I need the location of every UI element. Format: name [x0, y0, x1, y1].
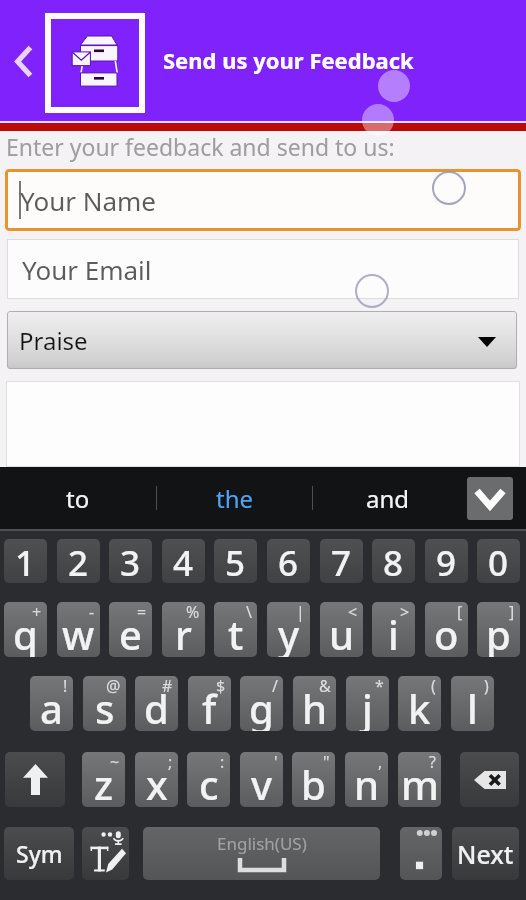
- staticText: Send us your Feedback: [163, 45, 414, 75]
- button[interactable]: q: [4, 602, 47, 657]
- staticText: >: [400, 602, 410, 623]
- staticText: ;: [168, 752, 173, 773]
- button[interactable]: to: [0, 467, 155, 529]
- button[interactable]: e: [109, 602, 152, 657]
- staticText: Sym: [16, 838, 63, 869]
- staticText: !: [63, 676, 68, 697]
- staticText: ): [484, 676, 489, 697]
- button[interactable]: z: [82, 752, 125, 807]
- staticText: b: [301, 757, 326, 807]
- button[interactable]: x: [135, 752, 178, 807]
- button[interactable]: j: [346, 676, 389, 731]
- staticText: Your Name: [20, 183, 157, 218]
- staticText: 6: [278, 539, 299, 583]
- staticText: n: [354, 757, 380, 807]
- button[interactable]: 7: [320, 539, 363, 583]
- button[interactable]: h: [293, 676, 336, 731]
- button[interactable]: Shift: [5, 752, 65, 807]
- staticText: 8: [383, 539, 404, 583]
- staticText: (: [431, 676, 436, 697]
- button[interactable]: p: [477, 602, 520, 657]
- button[interactable]: Next: [452, 827, 519, 880]
- button[interactable]: g: [240, 676, 283, 731]
- staticText: 0: [488, 539, 509, 583]
- button[interactable]: y: [267, 602, 310, 657]
- button[interactable]: Period: [400, 827, 442, 880]
- staticText: a: [40, 681, 63, 731]
- staticText: 4: [173, 539, 194, 583]
- staticText: p: [486, 607, 511, 657]
- button[interactable]: i: [372, 602, 415, 657]
- staticText: %: [186, 602, 200, 623]
- staticText: 2: [68, 539, 89, 583]
- staticText: Enter your feedback and send to us:: [6, 131, 395, 162]
- staticText: :: [220, 752, 225, 773]
- button[interactable]: n: [345, 752, 388, 807]
- button[interactable]: a: [30, 676, 73, 731]
- staticText: x: [146, 757, 168, 807]
- staticText: d: [144, 681, 169, 731]
- button[interactable]: 8: [372, 539, 415, 583]
- staticText: *: [375, 676, 384, 697]
- staticText: m: [401, 757, 439, 807]
- button[interactable]: 2: [57, 539, 100, 583]
- button[interactable]: 6: [267, 539, 310, 583]
- staticText: <: [348, 602, 358, 623]
- button[interactable]: Space: [143, 827, 380, 880]
- button[interactable]: s: [83, 676, 126, 731]
- staticText: $: [216, 676, 226, 697]
- button[interactable]: Backspace: [460, 752, 519, 807]
- button[interactable]: Hide keyboard: [467, 477, 513, 520]
- staticText: [: [457, 602, 463, 623]
- button[interactable]: c: [187, 752, 230, 807]
- button[interactable]: u: [320, 602, 363, 657]
- staticText: t: [228, 607, 244, 657]
- staticText: r: [175, 607, 192, 657]
- staticText: i: [388, 607, 399, 657]
- staticText: u: [329, 607, 355, 657]
- button[interactable]: 9: [425, 539, 468, 583]
- button[interactable]: Your Name: [5, 169, 521, 231]
- staticText: v: [251, 757, 273, 807]
- staticText: 7: [331, 539, 352, 583]
- staticText: and: [366, 482, 410, 515]
- button[interactable]: t: [214, 602, 257, 657]
- staticText: #: [162, 676, 173, 697]
- button[interactable]: Your Email: [7, 239, 519, 299]
- staticText: |: [296, 602, 305, 623]
- staticText: English(US): [217, 832, 307, 855]
- button[interactable]: m: [398, 752, 441, 807]
- staticText: to: [66, 482, 90, 515]
- button[interactable]: 0: [477, 539, 520, 583]
- staticText: Your Email: [22, 252, 152, 287]
- button[interactable]: the: [157, 467, 312, 529]
- button[interactable]: [6, 381, 520, 467]
- button[interactable]: Back: [0, 0, 45, 122]
- button[interactable]: Symbols: [4, 827, 74, 880]
- staticText: s: [95, 681, 115, 731]
- button[interactable]: d: [135, 676, 178, 731]
- staticText: q: [13, 607, 38, 657]
- button[interactable]: o: [425, 602, 468, 657]
- staticText: c: [199, 757, 219, 807]
- staticText: ": [323, 752, 330, 773]
- button[interactable]: b: [292, 752, 335, 807]
- staticText: g: [249, 681, 274, 731]
- button[interactable]: Praise: [7, 311, 517, 369]
- button[interactable]: v: [240, 752, 283, 807]
- button[interactable]: Handwriting: [82, 827, 129, 880]
- button[interactable]: w: [57, 602, 100, 657]
- button[interactable]: 3: [109, 539, 152, 583]
- staticText: e: [119, 607, 142, 657]
- staticText: @: [106, 676, 121, 697]
- button[interactable]: and: [313, 467, 463, 529]
- staticText: -: [89, 602, 95, 623]
- button[interactable]: f: [188, 676, 231, 731]
- button[interactable]: 1: [4, 539, 47, 583]
- staticText: w: [62, 607, 95, 657]
- button[interactable]: k: [398, 676, 441, 731]
- button[interactable]: r: [162, 602, 205, 657]
- button[interactable]: 5: [214, 539, 257, 583]
- button[interactable]: l: [451, 676, 494, 731]
- button[interactable]: 4: [162, 539, 205, 583]
